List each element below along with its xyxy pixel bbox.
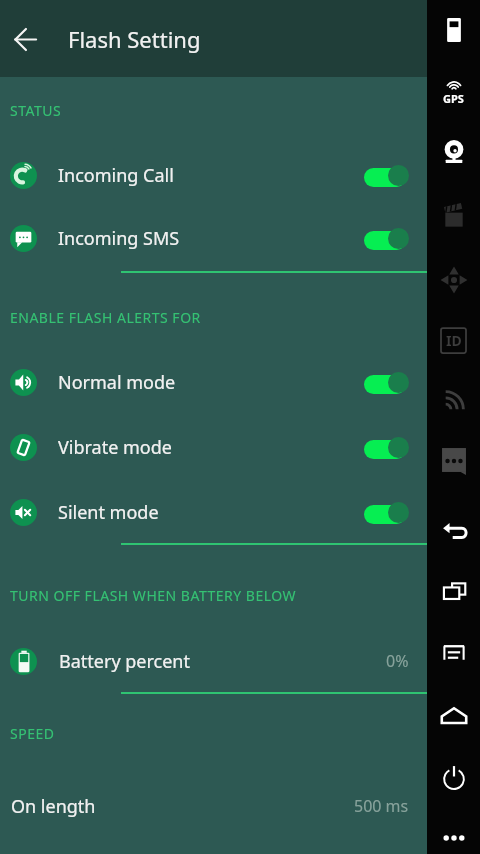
staticText: Battery percent [59,649,190,674]
button[interactable]: Network [427,378,480,422]
staticText: TURN OFF FLASH WHEN BATTERY BELOW [10,586,297,605]
staticText: Vibrate mode [58,435,172,460]
staticText: ENABLE FLASH ALERTS FOR [10,308,201,327]
button[interactable]: Silent mode [0,482,427,542]
button[interactable]: GPS [427,69,480,113]
button[interactable]: Move [427,258,480,302]
button[interactable]: Device ID [427,318,480,362]
staticText: ID [446,331,462,350]
button[interactable]: More options [427,816,480,854]
staticText: GPS [443,91,464,106]
button[interactable]: Back [427,509,480,553]
button[interactable]: Menu [427,631,480,675]
staticText: STATUS [10,101,62,120]
button[interactable]: Vibrate mode [0,417,427,477]
button[interactable]: Home [427,694,480,738]
staticText: Normal mode [58,370,176,395]
staticText: On length [11,794,96,819]
staticText: Silent mode [58,500,159,525]
button[interactable]: On length [0,776,427,836]
button[interactable]: Incoming Call [0,145,427,205]
staticText: SPEED [10,724,55,743]
button[interactable]: Messages [427,438,480,482]
staticText: 0% [386,650,409,672]
button[interactable]: Battery percent [0,631,427,691]
button[interactable]: Battery [427,8,480,52]
button[interactable]: Normal mode [0,352,427,412]
staticText: Incoming SMS [58,226,180,251]
staticText: Incoming Call [58,163,174,188]
staticText: Flash Setting [68,24,201,54]
button[interactable]: Incoming SMS [0,208,427,268]
button[interactable]: Recent apps [427,570,480,614]
button[interactable]: Record video [427,194,480,238]
button[interactable]: Back [3,17,47,61]
staticText: 500 ms [354,795,409,817]
button[interactable]: Power [427,755,480,799]
button[interactable]: Camera [427,130,480,174]
